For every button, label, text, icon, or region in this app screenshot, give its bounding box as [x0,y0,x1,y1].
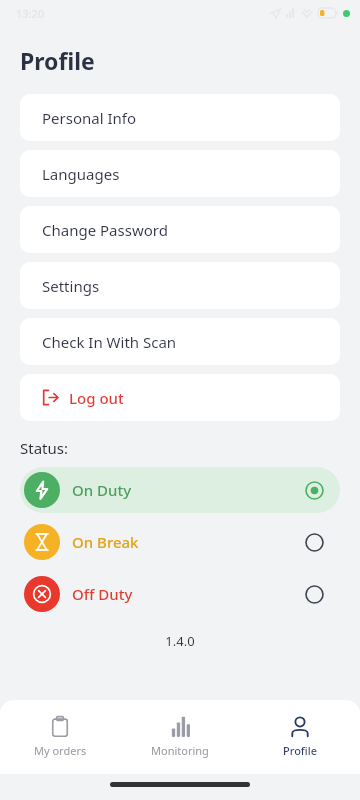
button[interactable]: Profile [240,700,360,774]
staticText: Settings [42,276,100,296]
staticText: Languages [42,164,120,184]
button[interactable]: Log out [20,374,340,421]
staticText: Personal Info [42,108,137,128]
staticText: Monitoring [151,743,209,758]
staticText: Status: [20,438,68,458]
button[interactable]: Change Password [20,206,340,253]
staticText: Check In With Scan [42,332,177,352]
button[interactable]: Personal Info [20,94,340,141]
button[interactable]: Off Duty [20,571,340,617]
button[interactable]: Monitoring [120,700,240,774]
button[interactable]: My orders [0,700,120,774]
staticText: 1.4.0 [0,632,360,650]
staticText: On Break [72,532,139,552]
button[interactable]: On Duty [20,467,340,513]
staticText: Profile [20,45,95,76]
staticText: Log out [69,388,124,408]
staticText: My orders [34,743,87,758]
button[interactable]: Languages [20,150,340,197]
button[interactable]: Check In With Scan [20,318,340,365]
staticText: 13:20 [16,6,45,21]
button[interactable]: On Break [20,519,340,565]
staticText: Off Duty [72,584,133,604]
staticText: On Duty [72,480,132,500]
staticText: Profile [283,743,318,758]
button[interactable]: Settings [20,262,340,309]
staticText: Change Password [42,220,168,240]
